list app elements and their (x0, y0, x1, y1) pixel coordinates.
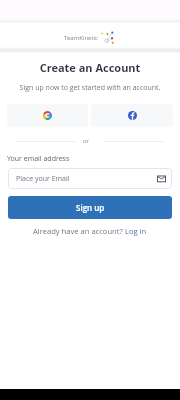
staticText: or (83, 137, 90, 145)
button[interactable]: Sign up (8, 196, 172, 219)
button[interactable]: Place your Email (8, 168, 172, 189)
staticText: TeamKinetic (64, 34, 98, 42)
staticText: Already have an account? (33, 226, 125, 236)
staticText: Place your Email (16, 174, 70, 184)
button[interactable]: Sign up with Google (7, 104, 88, 127)
staticText: Create an Account (0, 60, 180, 75)
button[interactable]: Log in (125, 226, 147, 236)
staticText: Sign up (76, 202, 105, 213)
button[interactable]: Sign up with Facebook (91, 104, 173, 127)
staticText: Sign up now to get started with an accou… (0, 83, 180, 93)
staticText: Your email address (7, 154, 70, 164)
